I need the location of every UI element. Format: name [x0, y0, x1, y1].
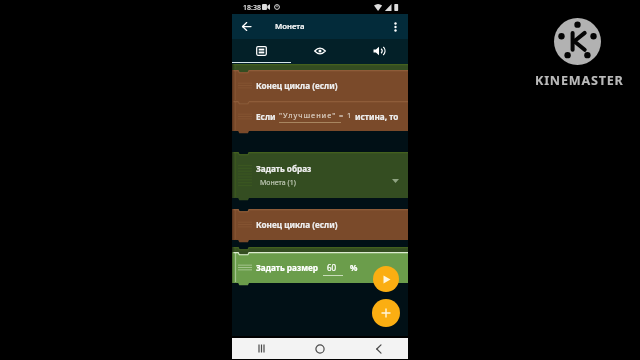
- staticText: %: [350, 262, 358, 273]
- button[interactable]: Recent apps: [232, 338, 290, 359]
- button[interactable]: Sound: [349, 39, 408, 64]
- button[interactable]: Home: [290, 338, 349, 359]
- staticText: Конец цикла (если): [256, 219, 338, 230]
- staticText: Монета: [275, 21, 305, 32]
- button[interactable]: Back: [234, 14, 259, 39]
- staticText: истина, то: [355, 111, 399, 122]
- staticText: Задать образ: [256, 163, 312, 174]
- staticText: KINEMASTER: [535, 72, 624, 89]
- button[interactable]: [232, 244, 408, 255]
- button[interactable]: Add block: [372, 299, 400, 327]
- button[interactable]: Конец цикла (если): [232, 206, 408, 243]
- staticText: Конец цикла (если): [256, 80, 338, 91]
- button[interactable]: Задать размер: [232, 249, 408, 286]
- button[interactable]: Code blocks: [232, 39, 290, 64]
- staticText: Монета (1): [260, 178, 296, 188]
- staticText: Если: [256, 111, 276, 122]
- staticText: Задать размер: [256, 262, 318, 273]
- button[interactable]: More options: [384, 16, 406, 38]
- button[interactable]: Задать образ: [232, 149, 408, 201]
- staticText: 60: [327, 262, 337, 273]
- button[interactable]: [232, 61, 408, 73]
- button[interactable]: Stage preview: [290, 39, 349, 64]
- staticText: 18:38: [243, 3, 261, 13]
- button[interactable]: Back: [349, 338, 408, 359]
- button[interactable]: Run project: [373, 266, 399, 292]
- button[interactable]: Если: [232, 98, 408, 134]
- staticText: "Улучшение" = 1: [279, 110, 353, 120]
- button[interactable]: Конец цикла (если): [232, 67, 408, 104]
